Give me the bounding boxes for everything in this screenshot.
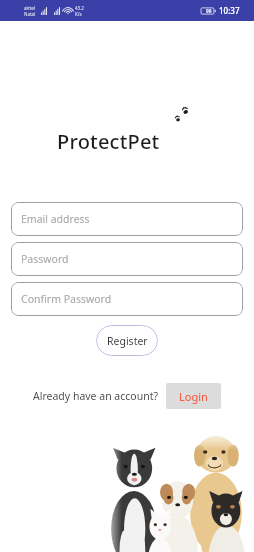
staticText: 96: [206, 8, 212, 15]
button[interactable]: Email address: [11, 202, 243, 236]
staticText: Email address: [21, 212, 90, 226]
button[interactable]: Password: [11, 242, 243, 276]
staticText: Login: [179, 389, 208, 404]
staticText: Password: [21, 252, 69, 266]
staticText: 43.2: [75, 5, 84, 11]
staticText: Register: [107, 334, 148, 348]
button[interactable]: Confirm Password: [11, 282, 243, 316]
staticText: Confirm Password: [21, 292, 112, 306]
button[interactable]: Login: [166, 383, 221, 409]
staticText: 10:37: [219, 5, 240, 16]
staticText: airtel: [24, 5, 35, 11]
staticText: Already have an account?: [33, 389, 159, 403]
button[interactable]: Register: [96, 325, 158, 356]
staticText: ProtectPet: [57, 128, 160, 155]
staticText: K/s: [75, 11, 82, 17]
staticText: Natal: [24, 11, 36, 17]
